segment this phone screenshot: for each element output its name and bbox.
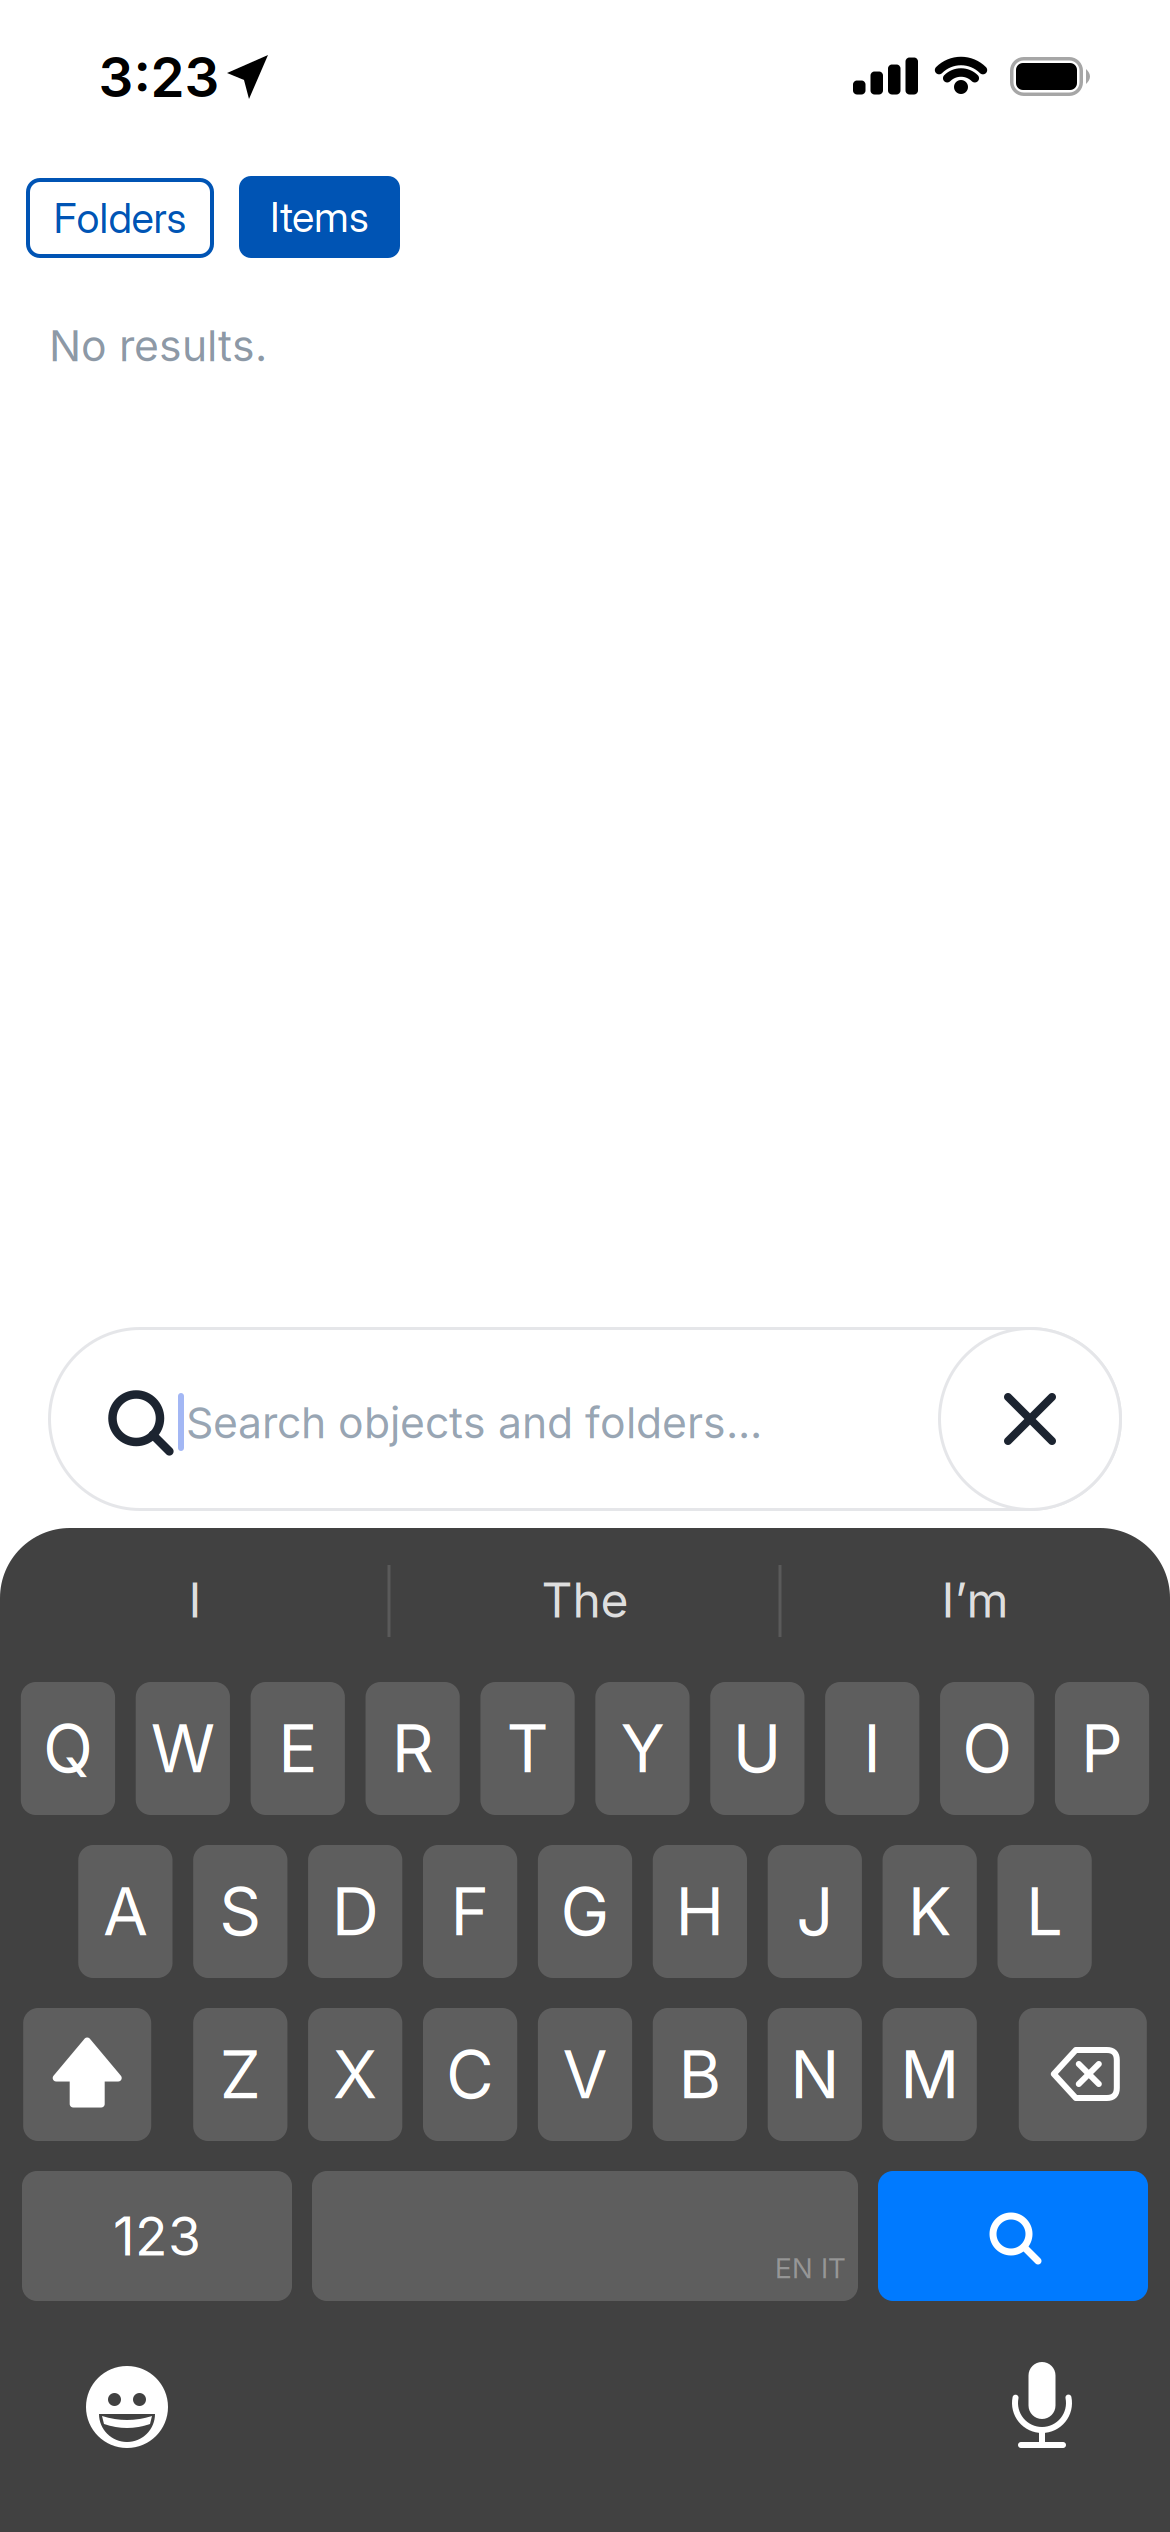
button[interactable]: The (400, 1545, 770, 1655)
button[interactable]: 123 (22, 2171, 292, 2301)
button[interactable]: Dictate (992, 2362, 1092, 2452)
button[interactable]: C (423, 2008, 517, 2141)
staticText: J (796, 1872, 833, 1951)
staticText: P (1081, 1709, 1123, 1788)
staticText: S (219, 1872, 261, 1951)
staticText: 123 (113, 2204, 201, 2268)
button[interactable]: Search (878, 2171, 1148, 2301)
button[interactable]: E (251, 1682, 345, 1815)
staticText: H (675, 1872, 724, 1951)
staticText: R (392, 1709, 434, 1788)
staticText: E (278, 1709, 317, 1788)
button[interactable]: U (710, 1682, 804, 1815)
staticText: D (332, 1872, 379, 1951)
button[interactable]: Shift (23, 2008, 151, 2141)
staticText: The (541, 1571, 628, 1629)
staticText: I (863, 1709, 881, 1788)
button[interactable]: I’m (790, 1545, 1160, 1655)
button[interactable]: Q (21, 1682, 115, 1815)
staticText: U (733, 1709, 782, 1788)
staticText: Search objects and folders... (186, 1397, 762, 1449)
button[interactable]: F (423, 1845, 517, 1978)
button[interactable]: I (825, 1682, 919, 1815)
button[interactable]: Emoji (82, 2362, 172, 2452)
button[interactable]: D (308, 1845, 402, 1978)
staticText: K (908, 1872, 952, 1951)
button[interactable]: Space (312, 2171, 858, 2301)
button[interactable]: Y (595, 1682, 689, 1815)
staticText: EN IT (775, 2251, 846, 2285)
button[interactable]: H (653, 1845, 747, 1978)
staticText: 3:23 (98, 44, 219, 110)
staticText: Z (220, 2035, 261, 2114)
button[interactable]: L (997, 1845, 1092, 1978)
button[interactable]: X (308, 2008, 402, 2141)
staticText: C (446, 2035, 494, 2114)
button[interactable]: I (10, 1545, 380, 1655)
button[interactable]: T (480, 1682, 575, 1815)
staticText: F (451, 1872, 490, 1951)
button[interactable]: W (136, 1682, 230, 1815)
staticText: V (562, 2035, 607, 2114)
button[interactable]: O (940, 1682, 1034, 1815)
button[interactable]: V (538, 2008, 632, 2141)
staticText: Y (620, 1709, 664, 1788)
staticText: B (678, 2035, 721, 2114)
staticText: Items (270, 192, 369, 242)
staticText: O (962, 1709, 1012, 1788)
button[interactable]: S (193, 1845, 287, 1978)
button[interactable]: R (365, 1682, 460, 1815)
staticText: No results. (49, 320, 267, 372)
button[interactable]: Items (239, 176, 400, 258)
button[interactable]: A (78, 1845, 172, 1978)
staticText: G (560, 1872, 609, 1951)
button[interactable]: P (1055, 1682, 1149, 1815)
button[interactable]: K (883, 1845, 977, 1978)
staticText: A (103, 1872, 148, 1951)
button[interactable]: Z (193, 2008, 287, 2141)
button[interactable]: Folders (26, 178, 214, 258)
button[interactable]: B (653, 2008, 747, 2141)
button[interactable]: M (883, 2008, 977, 2141)
button[interactable]: Search objects and folders (48, 1327, 1122, 1511)
staticText: Folders (53, 193, 186, 243)
button[interactable]: G (538, 1845, 632, 1978)
button[interactable]: J (768, 1845, 862, 1978)
staticText: I (188, 1571, 201, 1629)
button[interactable]: Clear search (938, 1327, 1122, 1511)
button[interactable]: N (768, 2008, 862, 2141)
button[interactable]: Delete (1019, 2008, 1147, 2141)
staticText: Q (43, 1709, 93, 1788)
staticText: X (333, 2035, 378, 2114)
staticText: T (506, 1709, 548, 1788)
staticText: L (1026, 1872, 1063, 1951)
staticText: I’m (941, 1571, 1008, 1629)
staticText: W (151, 1709, 215, 1788)
staticText: M (900, 2035, 959, 2114)
staticText: N (790, 2035, 839, 2114)
